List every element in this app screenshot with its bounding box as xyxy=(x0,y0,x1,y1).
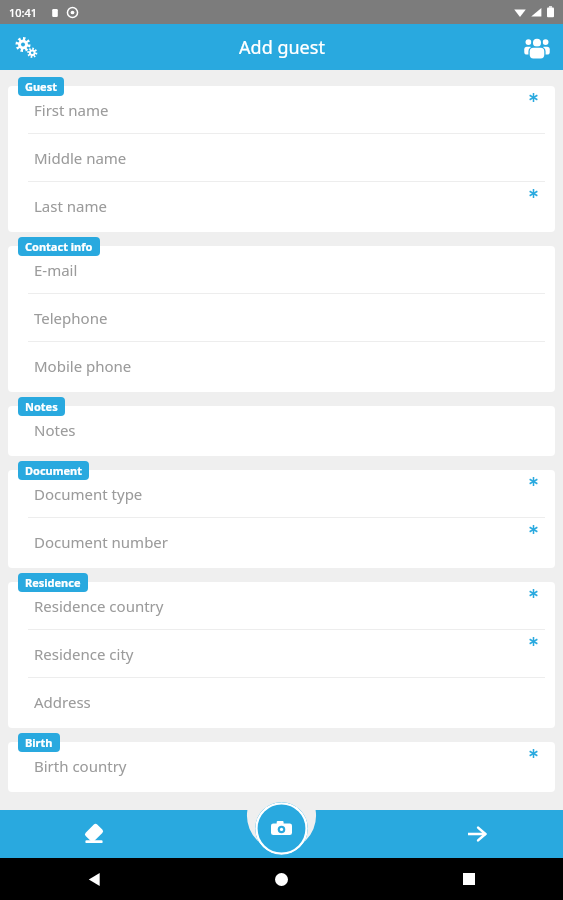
staticText: Contact info xyxy=(25,239,93,254)
staticText: Telephone xyxy=(34,308,108,328)
button[interactable]: Residence country xyxy=(8,582,555,629)
button[interactable]: Birth country xyxy=(8,742,555,789)
button[interactable]: Guest xyxy=(18,77,64,96)
staticText: First name xyxy=(34,100,109,120)
button[interactable]: Guest list xyxy=(516,26,558,68)
staticText: Address xyxy=(34,692,91,712)
button[interactable]: Notes xyxy=(8,406,555,453)
button[interactable]: Notes xyxy=(18,397,65,416)
button[interactable]: Last name xyxy=(8,182,555,229)
staticText: Last name xyxy=(34,196,107,216)
staticText: E-mail xyxy=(34,260,78,280)
button[interactable]: Mobile phone xyxy=(8,342,555,389)
staticText: Document xyxy=(25,463,82,478)
button[interactable]: Next xyxy=(449,810,505,858)
staticText: Notes xyxy=(25,399,58,414)
button[interactable]: Document number xyxy=(8,518,555,565)
button[interactable]: Address xyxy=(8,678,555,725)
staticText: Residence city xyxy=(34,644,134,664)
staticText: Guest xyxy=(25,79,57,94)
staticText: Middle name xyxy=(34,148,127,168)
staticText: Document type xyxy=(34,484,143,504)
button[interactable]: Birth xyxy=(18,733,60,752)
button[interactable]: Home xyxy=(261,859,301,899)
button[interactable]: Settings xyxy=(5,26,47,68)
button[interactable]: Take photo xyxy=(255,802,308,855)
staticText: Notes xyxy=(34,420,76,440)
button[interactable]: First name xyxy=(8,86,555,133)
button[interactable]: Clear form xyxy=(66,810,122,858)
staticText: Residence xyxy=(25,575,81,590)
staticText: 10:41 xyxy=(9,5,38,20)
button[interactable]: Middle name xyxy=(8,134,555,181)
staticText: Mobile phone xyxy=(34,356,132,376)
button[interactable]: Back xyxy=(74,859,114,899)
button[interactable]: Contact info xyxy=(18,237,100,256)
button[interactable]: Residence city xyxy=(8,630,555,677)
button[interactable]: Recent apps xyxy=(449,859,489,899)
button[interactable]: Document type xyxy=(8,470,555,517)
staticText: Residence country xyxy=(34,596,164,616)
button[interactable]: E-mail xyxy=(8,246,555,293)
staticText: Birth country xyxy=(34,756,127,776)
staticText: Add guest xyxy=(239,35,325,60)
staticText: Document number xyxy=(34,532,169,552)
staticText: Birth xyxy=(25,735,53,750)
button[interactable]: Residence xyxy=(18,573,88,592)
button[interactable]: Telephone xyxy=(8,294,555,341)
button[interactable]: Document xyxy=(18,461,89,480)
